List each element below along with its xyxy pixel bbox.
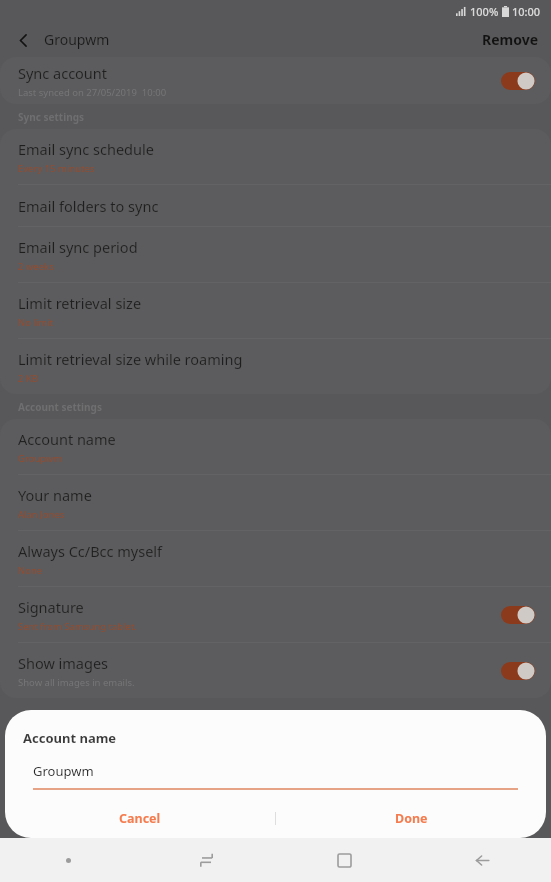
staticText: Email folders to sync — [18, 196, 159, 216]
button[interactable]: Email sync schedule — [0, 129, 551, 184]
staticText: Your name — [18, 485, 92, 505]
staticText: Cancel — [119, 810, 161, 827]
staticText: Done — [395, 810, 428, 827]
button[interactable]: Remove — [470, 23, 551, 56]
button[interactable]: Your name — [0, 475, 551, 530]
button[interactable]: Signature — [0, 587, 551, 642]
staticText: Groupwm — [33, 762, 94, 780]
staticText: Signature — [18, 597, 84, 617]
button[interactable]: Email sync period — [0, 227, 551, 282]
staticText: Alan Jones — [18, 508, 65, 521]
button[interactable]: Limit retrieval size — [0, 283, 551, 338]
staticText: Email sync schedule — [18, 139, 154, 159]
staticText: Email sync period — [18, 237, 138, 257]
button[interactable]: Show images switch — [501, 662, 535, 680]
button[interactable]: Account name — [0, 419, 551, 474]
staticText: Account name — [23, 729, 117, 747]
button[interactable]: Home — [275, 838, 413, 882]
button[interactable]: Email folders to sync — [0, 185, 551, 226]
staticText: Last synced on 27/05/2019 10:00 — [18, 86, 167, 99]
button[interactable]: Recents — [137, 838, 275, 882]
staticText: Remove — [482, 30, 539, 49]
button[interactable]: Signature switch — [501, 606, 535, 624]
staticText: Sync account — [18, 63, 108, 83]
staticText: Every 15 minutes — [18, 162, 95, 175]
button[interactable]: Cancel — [5, 802, 275, 834]
button[interactable]: Always Cc/Bcc myself — [0, 531, 551, 586]
button[interactable]: Hide navigation bar — [0, 838, 137, 882]
staticText: Groupwm — [44, 30, 110, 49]
staticText: Groupwm — [18, 452, 63, 465]
button[interactable]: Limit retrieval size while roaming — [0, 339, 551, 394]
staticText: Account settings — [18, 400, 102, 414]
staticText: Show all images in emails. — [18, 676, 135, 689]
button[interactable]: Navigate up — [8, 25, 38, 55]
staticText: Account name — [18, 429, 116, 449]
staticText: 100% — [470, 4, 499, 19]
button[interactable]: Done — [276, 802, 546, 834]
staticText: No limit — [18, 316, 54, 329]
button[interactable]: Show images — [0, 643, 551, 698]
staticText: Sent from Samsung tablet. — [18, 620, 137, 633]
staticText: Limit retrieval size while roaming — [18, 349, 243, 369]
staticText: Limit retrieval size — [18, 293, 142, 313]
staticText: 2 KB — [18, 372, 38, 385]
staticText: None — [18, 564, 43, 577]
button[interactable]: Back — [413, 838, 551, 882]
button[interactable]: Sync account — [0, 57, 551, 104]
staticText: 10:00 — [512, 4, 541, 19]
button[interactable]: Sync account switch — [501, 72, 535, 90]
staticText: 2 weeks — [18, 260, 54, 273]
staticText: Always Cc/Bcc myself — [18, 541, 163, 561]
staticText: Sync settings — [18, 110, 84, 124]
staticText: Show images — [18, 653, 109, 673]
